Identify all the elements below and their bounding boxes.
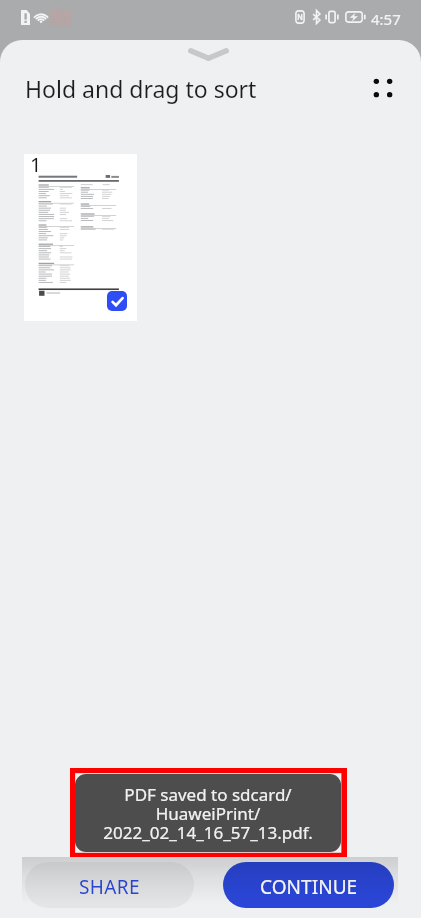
button[interactable]: CONTINUE [223,862,394,908]
button[interactable]: More options [359,64,407,112]
staticText: SHARE [79,874,141,900]
button[interactable]: PDF saved to sdcard/ HuaweiPrint/ 2022_0… [75,774,341,852]
staticText: Hold and drag to sort [25,73,257,104]
button[interactable]: SHARE [25,862,194,908]
staticText: CONTINUE [260,874,358,900]
staticText: PDF saved to sdcard/ HuaweiPrint/ 2022_0… [103,783,313,844]
button[interactable]: Page selected [107,291,127,311]
button[interactable]: Collapse [0,40,421,68]
staticText: 4:57 [371,9,401,29]
button[interactable]: 1 [24,154,137,321]
staticText: 1 [30,151,42,178]
